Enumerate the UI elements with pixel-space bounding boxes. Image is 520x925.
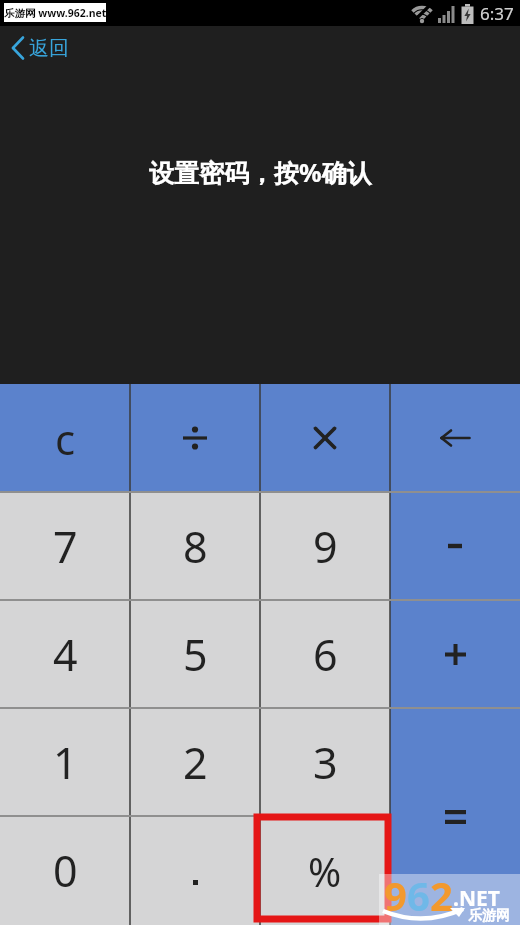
- staticText: 8: [183, 517, 208, 576]
- staticText: 9: [313, 517, 338, 576]
- staticText: 6:37: [480, 2, 514, 25]
- staticText: 设置密码，按%确认: [149, 155, 372, 189]
- staticText: 6: [313, 625, 338, 684]
- button[interactable]: 1: [0, 708, 130, 816]
- button[interactable]: [390, 600, 520, 708]
- button[interactable]: [130, 816, 260, 925]
- staticText: .NET: [453, 884, 500, 913]
- staticText: c: [55, 410, 76, 467]
- staticText: %: [308, 844, 342, 898]
- button[interactable]: [390, 708, 520, 925]
- button[interactable]: 0: [0, 816, 130, 925]
- button[interactable]: c: [0, 384, 130, 492]
- staticText: 3: [313, 733, 338, 792]
- staticText: 4: [53, 625, 78, 684]
- button[interactable]: 6: [260, 600, 390, 708]
- button[interactable]: 5: [130, 600, 260, 708]
- staticText: 1: [53, 733, 78, 792]
- staticText: 乐游网: [468, 907, 510, 925]
- button[interactable]: 2: [130, 708, 260, 816]
- button[interactable]: %: [260, 816, 390, 925]
- staticText: 2: [183, 733, 208, 792]
- button[interactable]: [130, 384, 260, 492]
- staticText: 2: [430, 868, 453, 919]
- staticText: 5: [183, 625, 208, 684]
- button[interactable]: 8: [130, 492, 260, 600]
- staticText: 返回: [29, 36, 69, 61]
- staticText: 乐游网 www.962.net: [4, 6, 106, 20]
- button[interactable]: [390, 492, 520, 600]
- button[interactable]: 9: [260, 492, 390, 600]
- button[interactable]: [390, 384, 520, 492]
- staticText: 7: [53, 517, 78, 576]
- staticText: 6: [407, 868, 430, 919]
- staticText: 0: [53, 841, 78, 900]
- button[interactable]: 4: [0, 600, 130, 708]
- button[interactable]: 返回: [10, 35, 69, 61]
- staticText: 9: [384, 868, 407, 919]
- button[interactable]: [260, 384, 390, 492]
- button[interactable]: 7: [0, 492, 130, 600]
- button[interactable]: 3: [260, 708, 390, 816]
